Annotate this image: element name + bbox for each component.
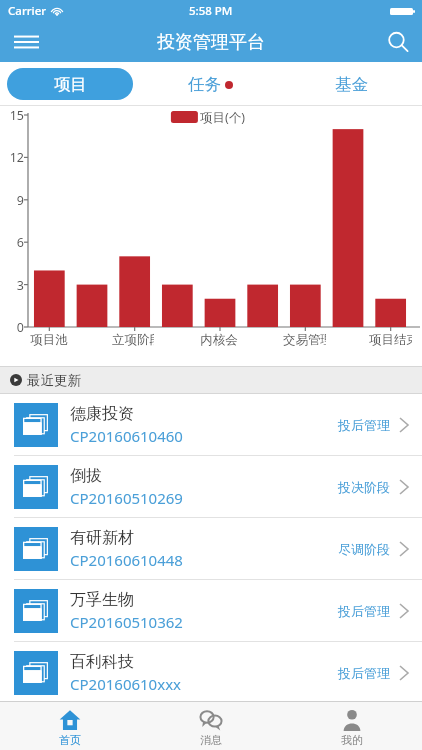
staticText: 万孚生物 <box>70 590 134 610</box>
staticText: 3 <box>16 277 24 294</box>
staticText: Carrier <box>8 3 47 19</box>
staticText: 我的 <box>341 733 363 747</box>
button[interactable]: 德康投资 <box>0 394 422 455</box>
staticText: CP20160610xxx <box>70 674 182 694</box>
button[interactable]: 有研新材 <box>0 518 422 579</box>
staticText: 有研新材 <box>70 528 134 548</box>
staticText: 基金 <box>335 74 368 95</box>
staticText: 12 <box>9 149 24 166</box>
staticText: 5:58 PM <box>189 3 233 19</box>
staticText: 投后管理 <box>338 603 390 619</box>
staticText: 15 <box>9 107 24 124</box>
staticText: 投决阶段 <box>338 479 390 495</box>
button[interactable]: 基金 <box>281 62 422 106</box>
staticText: 0 <box>16 319 24 336</box>
staticText: 项目池 <box>30 332 68 348</box>
staticText: 立项阶段 <box>112 332 154 348</box>
staticText: CP20160510269 <box>70 488 183 508</box>
staticText: 倒拔 <box>70 466 102 486</box>
staticText: 投资管理平台 <box>157 31 265 54</box>
staticText: 消息 <box>200 733 222 747</box>
button[interactable]: 首页 <box>0 705 140 747</box>
button[interactable]: 百利科技 <box>0 642 422 703</box>
staticText: 项目结束 <box>369 332 412 348</box>
staticText: 项目(个) <box>200 109 246 126</box>
staticText: 6 <box>16 234 24 251</box>
staticText: 首页 <box>59 733 81 747</box>
staticText: 内核会 <box>200 332 238 348</box>
staticText: 交易管理 <box>283 332 326 348</box>
staticText: CP20160510362 <box>70 612 183 632</box>
staticText: 投后管理 <box>338 417 390 433</box>
staticText: 项目 <box>54 74 87 95</box>
staticText: 任务 <box>188 74 221 95</box>
button[interactable]: Menu <box>0 22 52 62</box>
staticText: 尽调阶段 <box>338 541 390 557</box>
button[interactable]: 消息 <box>140 705 281 747</box>
button[interactable]: 倒拔 <box>0 456 422 517</box>
button[interactable]: 我的 <box>281 705 422 747</box>
staticText: CP20160610448 <box>70 550 183 570</box>
staticText: 投后管理 <box>338 665 390 681</box>
button[interactable]: 万孚生物 <box>0 580 422 641</box>
staticText: 最近更新 <box>27 372 81 389</box>
staticText: 9 <box>16 192 24 209</box>
button[interactable]: 项目 <box>7 68 133 100</box>
button[interactable]: Search <box>374 22 422 62</box>
staticText: CP20160610460 <box>70 426 183 446</box>
button[interactable]: 任务 <box>140 62 281 106</box>
staticText: 德康投资 <box>70 404 134 424</box>
staticText: 百利科技 <box>70 652 134 672</box>
